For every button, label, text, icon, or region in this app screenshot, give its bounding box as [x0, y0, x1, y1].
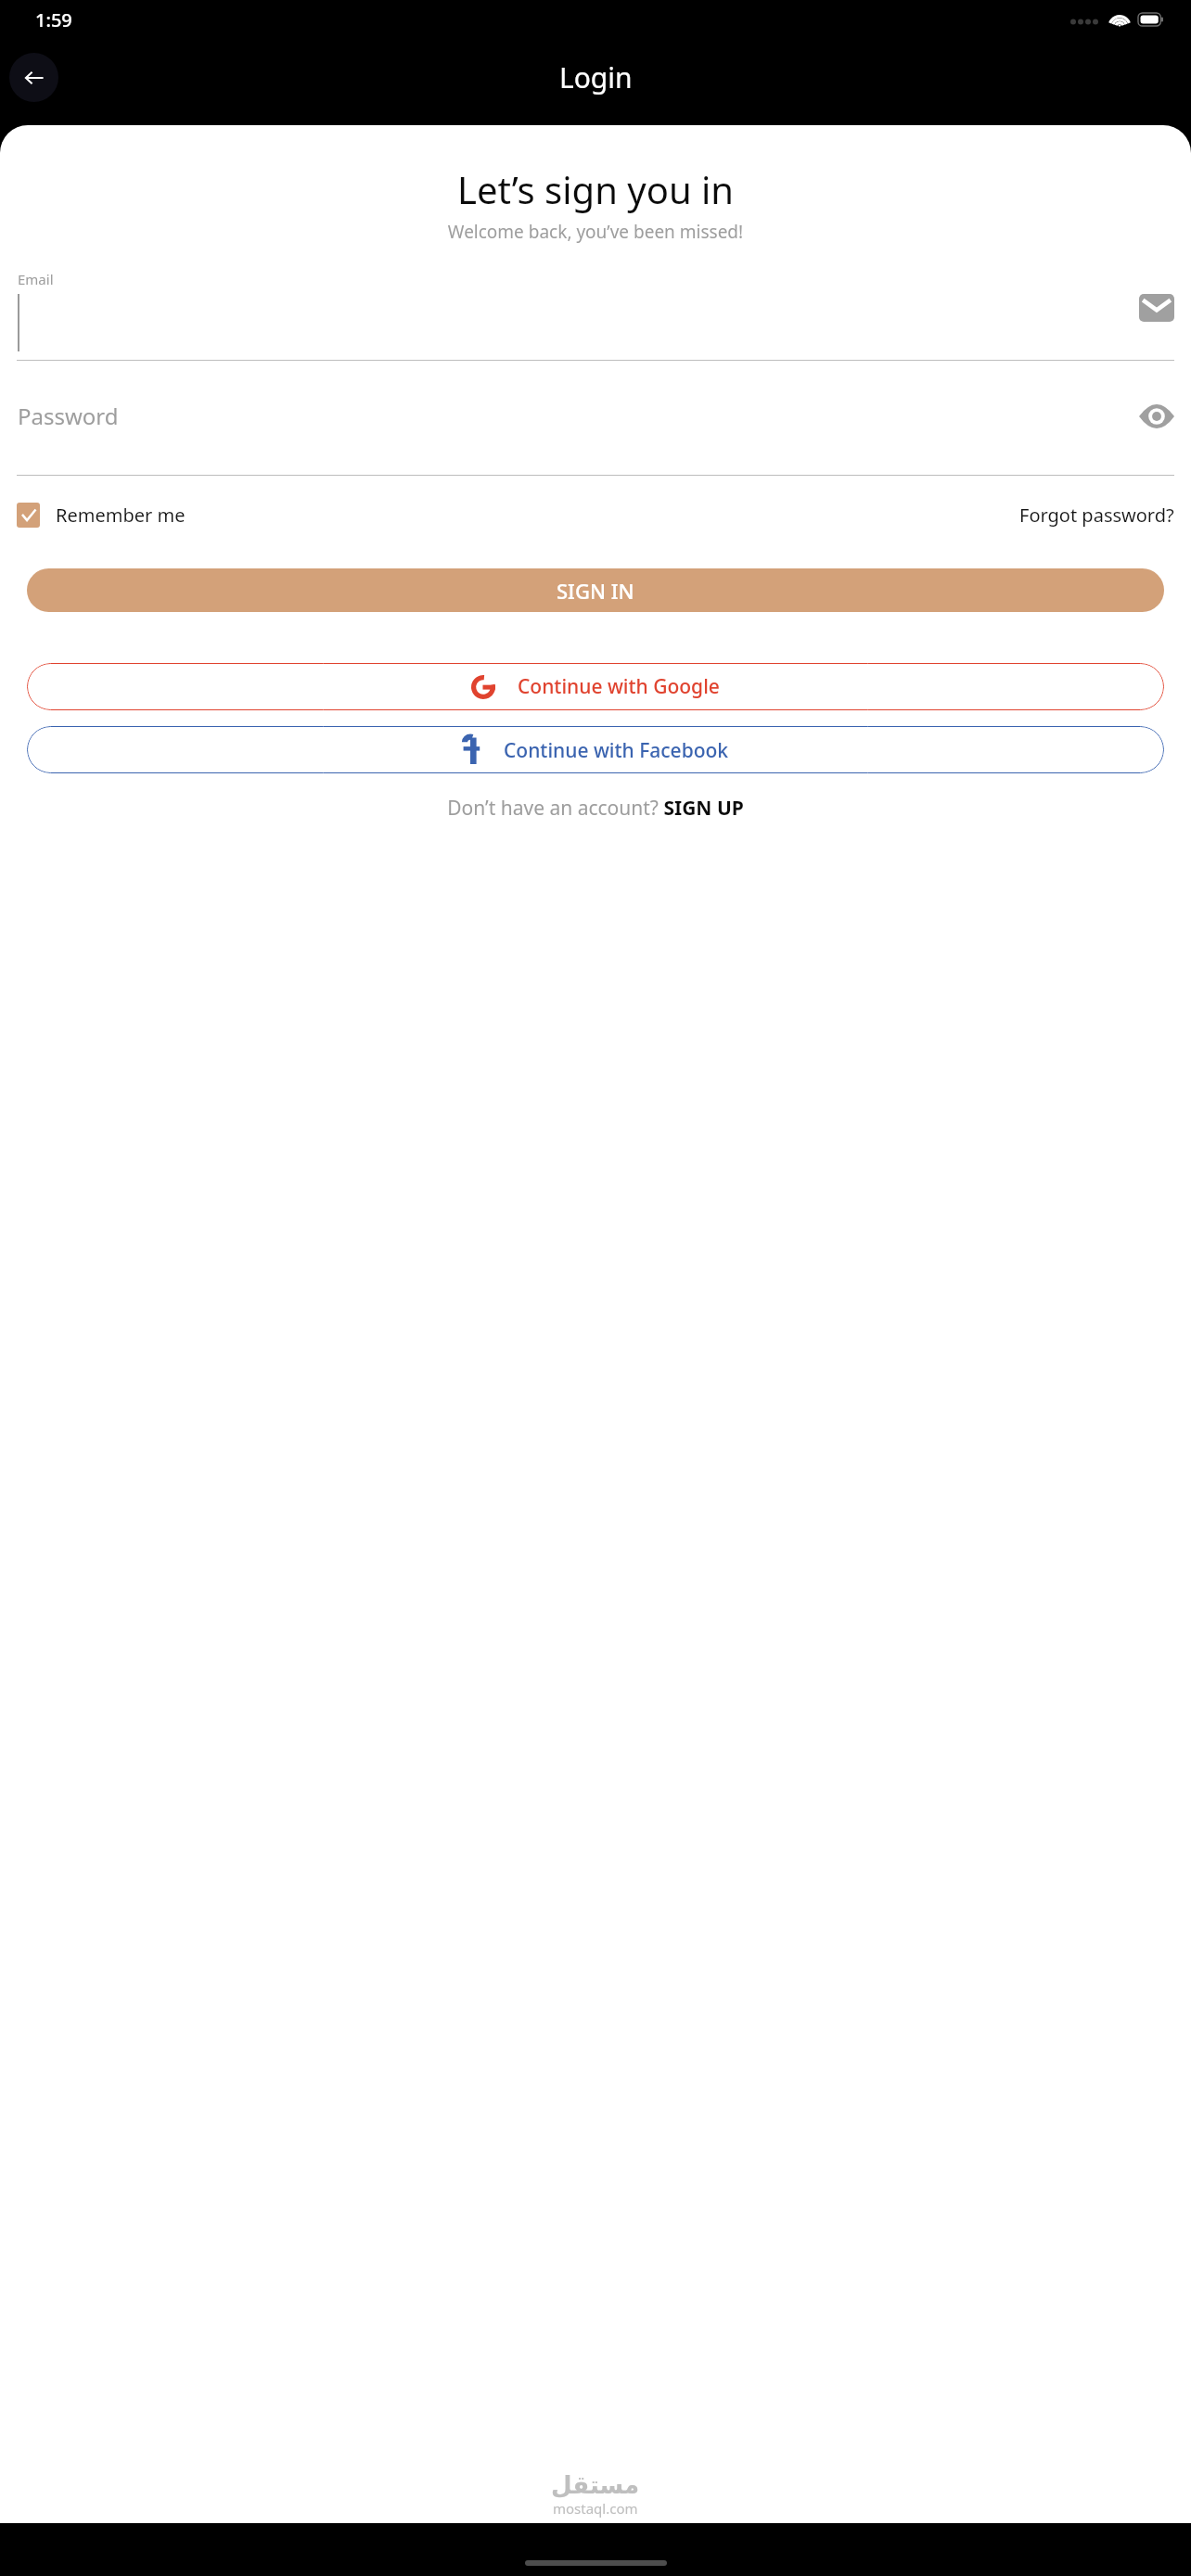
- button[interactable]: Don’t have an account? SIGN UP: [17, 795, 1174, 822]
- staticText: Welcome back, you’ve been missed!: [17, 220, 1174, 244]
- staticText: Forgot password?: [1019, 503, 1174, 528]
- button[interactable]: SIGN IN: [27, 568, 1164, 612]
- staticText: Login: [559, 58, 633, 96]
- button[interactable]: Show password: [1139, 404, 1174, 428]
- other: Email: [1139, 294, 1174, 322]
- staticText: Let’s sign you in: [17, 164, 1174, 214]
- button[interactable]: Password: [17, 361, 1174, 475]
- staticText: Continue with Google: [518, 673, 720, 700]
- staticText: Remember me: [56, 503, 186, 528]
- staticText: Continue with Facebook: [504, 737, 729, 764]
- button[interactable]: Remember me: [17, 503, 186, 528]
- button[interactable]: Back: [9, 53, 58, 102]
- button[interactable]: Forgot password?: [1019, 503, 1174, 528]
- staticText: Password: [18, 401, 119, 431]
- staticText: mostaql.com: [553, 2499, 638, 2518]
- staticText: SIGN IN: [557, 577, 634, 605]
- staticText: 1:59: [35, 7, 72, 32]
- staticText: Email: [18, 270, 54, 288]
- button[interactable]: Continue with Facebook: [27, 726, 1164, 773]
- button[interactable]: Email: [17, 270, 1174, 360]
- staticText: Don’t have an account? SIGN UP: [447, 795, 744, 822]
- button[interactable]: Continue with Google: [27, 663, 1164, 710]
- staticText: مستقل: [551, 2471, 640, 2499]
